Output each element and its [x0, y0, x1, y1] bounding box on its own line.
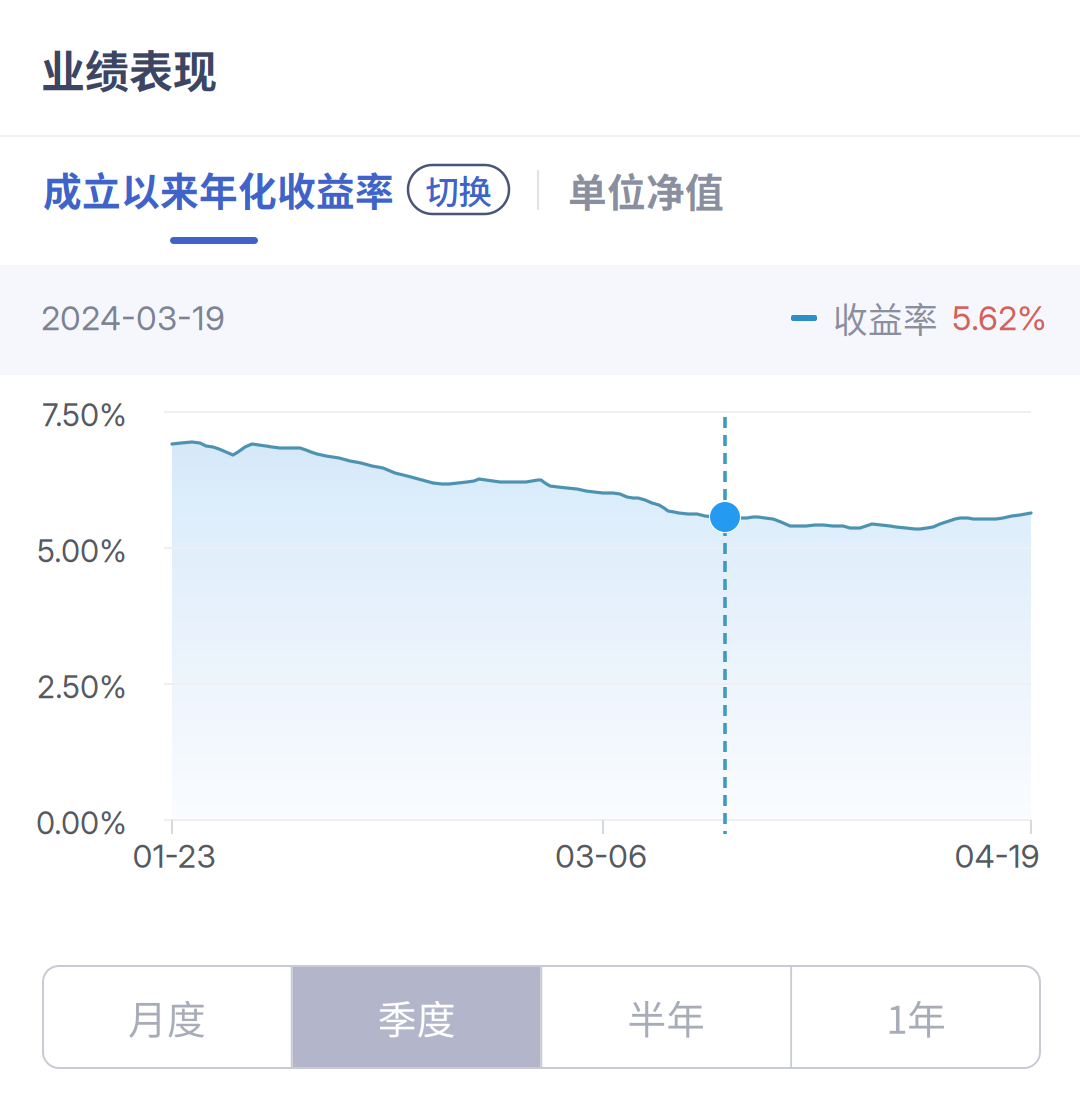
staticText: 03-06	[555, 837, 647, 875]
staticText: 切换	[425, 165, 491, 214]
staticText: 7.50%	[42, 396, 127, 433]
staticText: 5.62%	[952, 298, 1047, 338]
staticText: 0.00%	[36, 804, 127, 841]
button[interactable]: 月度	[43, 966, 291, 1068]
staticText: 成立以来年化收益率	[43, 161, 394, 217]
button[interactable]: 季度	[293, 966, 541, 1068]
staticText: 1年	[886, 989, 946, 1045]
staticText: 单位净值	[568, 162, 724, 218]
staticText: 半年	[627, 989, 705, 1045]
staticText: 2024-03-19	[41, 298, 225, 338]
staticText: 04-19	[954, 837, 1039, 875]
staticText: 业绩表现	[41, 37, 217, 101]
staticText: 2.50%	[37, 668, 127, 705]
button[interactable]: 1年	[792, 966, 1040, 1068]
button[interactable]: 单位净值	[568, 162, 724, 218]
staticText: 月度	[128, 989, 206, 1045]
staticText: 01-23	[132, 837, 215, 875]
staticText: 收益率	[833, 293, 938, 343]
staticText: 季度	[378, 989, 456, 1045]
button[interactable]: 成立以来年化收益率	[43, 137, 394, 265]
staticText: 5.00%	[37, 532, 127, 569]
button[interactable]: 切换	[408, 165, 509, 214]
button[interactable]: 半年	[542, 966, 790, 1068]
